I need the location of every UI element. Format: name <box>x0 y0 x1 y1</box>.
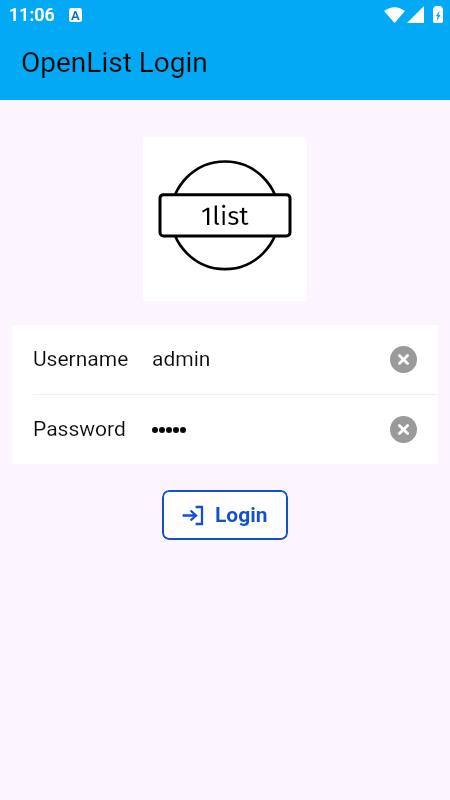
button[interactable]: Login <box>162 490 288 540</box>
staticText: A <box>71 8 80 21</box>
other: App notification <box>69 8 82 22</box>
staticText: Username <box>33 347 129 372</box>
staticText: 1list <box>201 201 249 232</box>
staticText: admin <box>152 347 211 372</box>
button[interactable]: Password <box>12 395 438 464</box>
button[interactable]: Clear <box>390 346 417 373</box>
button[interactable]: Username <box>12 325 438 394</box>
staticText: 11:06 <box>9 4 55 25</box>
button[interactable]: Clear <box>390 416 417 443</box>
staticText: Login <box>215 503 268 528</box>
staticText: Password <box>33 417 126 442</box>
staticText: OpenList Login <box>21 46 208 79</box>
